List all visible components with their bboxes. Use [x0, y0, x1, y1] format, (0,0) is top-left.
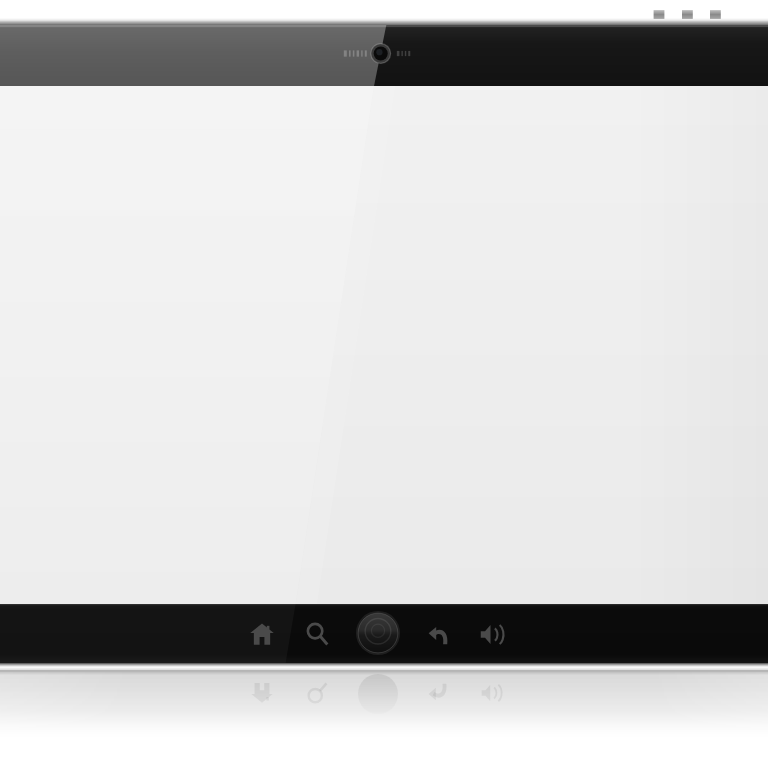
- button[interactable]: [0, 86, 768, 604]
- button[interactable]: Volume: [466, 608, 518, 660]
- other: Front camera: [336, 40, 436, 66]
- button[interactable]: Power and volume buttons: [650, 8, 730, 20]
- button[interactable]: Home: [236, 608, 288, 660]
- button[interactable]: Home button: [354, 609, 402, 657]
- button[interactable]: Search: [291, 608, 343, 660]
- button[interactable]: Back: [412, 608, 464, 660]
